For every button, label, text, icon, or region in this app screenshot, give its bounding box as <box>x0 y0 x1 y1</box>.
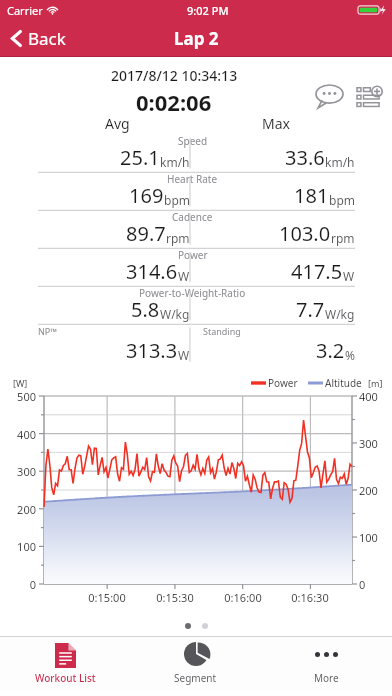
staticText: rpm <box>166 230 190 246</box>
staticText: 169 <box>129 182 164 209</box>
staticText: 0 <box>359 577 392 592</box>
button[interactable]: Workout List <box>0 637 130 690</box>
staticText: rpm <box>331 230 355 246</box>
staticText: More <box>314 671 339 685</box>
staticText: 100 <box>359 530 392 545</box>
staticText: Carrier <box>7 3 43 18</box>
staticText: km/h <box>160 154 190 170</box>
staticText: Segment <box>174 671 217 685</box>
staticText: Cadence <box>172 210 213 224</box>
staticText: bpm <box>164 192 190 208</box>
staticText: Lap 2 <box>174 27 219 50</box>
staticText: 89.7 <box>126 220 166 247</box>
staticText: Speed <box>178 134 208 148</box>
staticText: bpm <box>329 192 355 208</box>
staticText: 33.6 <box>285 144 325 171</box>
staticText: 0:15:00 <box>77 590 137 605</box>
staticText: Heart Rate <box>167 172 218 186</box>
staticText: Back <box>28 27 66 50</box>
staticText: W/kg <box>325 306 355 322</box>
staticText: [W] <box>13 377 28 389</box>
staticText: 0 <box>0 577 36 592</box>
staticText: Avg <box>105 114 130 133</box>
staticText: 0:02:06 <box>136 87 212 114</box>
staticText: 25.1 <box>120 144 160 171</box>
staticText: NP™ <box>38 325 58 337</box>
staticText: 100 <box>0 539 36 554</box>
staticText: Workout List <box>35 671 96 685</box>
staticText: Power <box>268 376 298 390</box>
button[interactable]: Comments <box>311 80 348 113</box>
staticText: Power-to-Weight-Ratio <box>139 286 246 300</box>
staticText: 5.8 <box>131 296 160 323</box>
button[interactable]: More <box>261 637 392 690</box>
staticText: 3.2 <box>316 337 345 364</box>
staticText: km/h <box>325 154 355 170</box>
staticText: 417.5 <box>291 258 343 285</box>
staticText: Power <box>178 248 208 262</box>
staticText: [m] <box>368 377 383 389</box>
staticText: 0:16:30 <box>280 590 340 605</box>
staticText: 400 <box>359 389 392 404</box>
button[interactable]: Segment <box>130 637 261 690</box>
staticText: % <box>345 347 355 363</box>
staticText: 103.0 <box>279 220 331 247</box>
staticText: 300 <box>0 464 36 479</box>
staticText: 0:16:00 <box>213 590 273 605</box>
staticText: 7.7 <box>296 296 325 323</box>
staticText: 500 <box>0 389 36 404</box>
staticText: W <box>178 268 190 284</box>
staticText: 400 <box>0 427 36 442</box>
staticText: 2017/8/12 10:34:13 <box>111 66 238 85</box>
staticText: 200 <box>359 483 392 498</box>
staticText: Standing <box>203 325 241 337</box>
staticText: 314.6 <box>126 258 178 285</box>
staticText: W <box>178 347 190 363</box>
staticText: 300 <box>359 436 392 451</box>
staticText: 200 <box>0 502 36 517</box>
staticText: W <box>343 268 355 284</box>
staticText: Max <box>262 114 290 133</box>
staticText: 0:15:30 <box>145 590 205 605</box>
button[interactable]: Add to list <box>352 81 388 113</box>
staticText: 9:02 PM <box>187 3 229 18</box>
staticText: W/kg <box>160 306 190 322</box>
staticText: 181 <box>294 182 329 209</box>
staticText: Altitude <box>325 376 362 390</box>
staticText: 313.3 <box>126 337 178 364</box>
button[interactable]: Back <box>0 22 78 55</box>
